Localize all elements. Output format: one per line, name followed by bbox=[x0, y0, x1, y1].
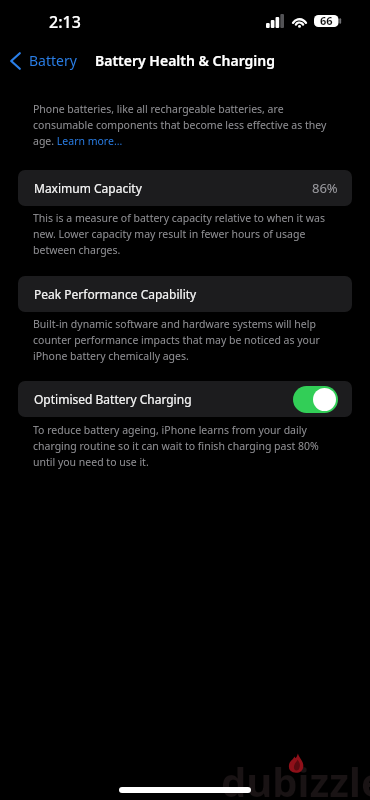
staticText: 86% bbox=[312, 179, 338, 197]
button[interactable]: Optimised Battery Charging bbox=[18, 381, 352, 417]
button[interactable]: Optimised Battery Charging bbox=[293, 386, 338, 413]
staticText: Optimised Battery Charging bbox=[34, 391, 192, 407]
staticText: dubizzle bbox=[221, 754, 370, 800]
staticText: Built-in dynamic software and hardware s… bbox=[33, 317, 335, 364]
staticText: 66 bbox=[320, 13, 333, 28]
staticText: Maximum Capacity bbox=[34, 180, 142, 196]
staticText: Peak Performance Capability bbox=[34, 286, 197, 302]
staticText: 2:13 bbox=[49, 11, 81, 33]
staticText: Battery Health & Charging bbox=[95, 51, 275, 70]
staticText: Phone batteries, like all rechargeable b… bbox=[33, 102, 335, 149]
staticText: Battery bbox=[29, 51, 77, 70]
button[interactable]: Maximum Capacity bbox=[18, 170, 352, 206]
button[interactable]: Battery bbox=[0, 47, 83, 74]
staticText: To reduce battery ageing, iPhone learns … bbox=[33, 423, 335, 470]
staticText: This is a measure of battery capacity re… bbox=[33, 211, 335, 258]
button[interactable]: Peak Performance Capability bbox=[18, 276, 352, 312]
